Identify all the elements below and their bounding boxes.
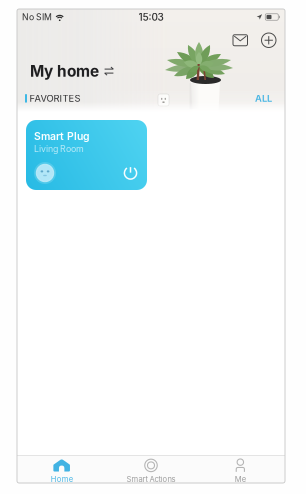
button[interactable]: Home bbox=[17, 456, 106, 483]
staticText: Living Room bbox=[34, 144, 84, 154]
staticText: Me bbox=[235, 475, 246, 484]
button[interactable]: Me bbox=[196, 456, 285, 483]
staticText: Smart Plug bbox=[34, 130, 90, 143]
button[interactable]: ALL bbox=[252, 91, 275, 106]
button[interactable]: Switch home bbox=[104, 66, 114, 76]
button[interactable]: Messages bbox=[229, 31, 251, 50]
button[interactable]: Smart Plug bbox=[26, 120, 147, 190]
staticText: No SIM bbox=[22, 12, 52, 22]
button[interactable]: Add accessory bbox=[257, 29, 280, 51]
staticText: ALL bbox=[255, 93, 272, 104]
staticText: FAVORITES bbox=[29, 93, 80, 104]
staticText: Smart Actions bbox=[126, 475, 175, 484]
staticText: My home bbox=[30, 62, 99, 80]
staticText: 15:03 bbox=[138, 11, 163, 23]
staticText: Home bbox=[51, 475, 73, 484]
button[interactable]: Smart Actions bbox=[106, 456, 196, 483]
